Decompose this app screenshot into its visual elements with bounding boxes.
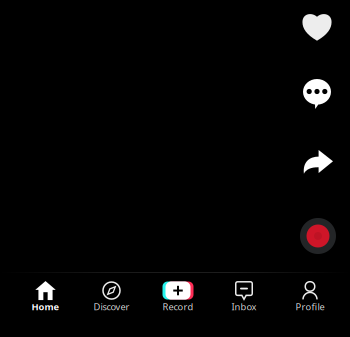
button[interactable]: Comments xyxy=(298,74,336,114)
staticText: Discover xyxy=(93,301,129,313)
staticText: Inbox xyxy=(231,301,256,313)
button[interactable]: Sound xyxy=(296,214,340,258)
button[interactable]: Discover xyxy=(80,274,142,320)
button[interactable]: Inbox xyxy=(213,274,275,320)
button[interactable]: Home xyxy=(14,274,76,320)
staticText: Home xyxy=(31,301,59,313)
button[interactable]: Like xyxy=(297,8,337,46)
button[interactable]: Record xyxy=(147,274,209,320)
button[interactable]: Profile xyxy=(279,274,341,320)
staticText: Profile xyxy=(295,301,324,313)
staticText: Record xyxy=(162,301,193,313)
button[interactable]: Share xyxy=(298,145,338,179)
